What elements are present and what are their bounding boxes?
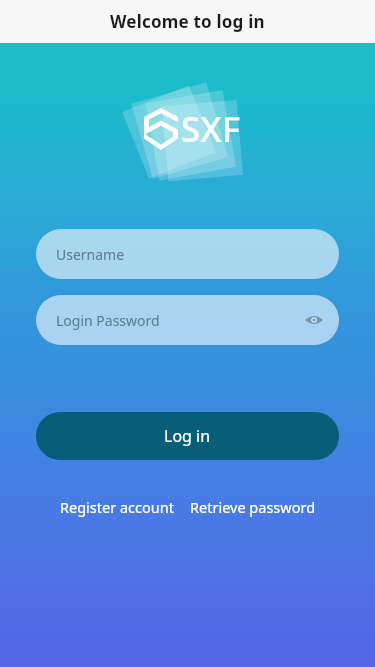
- staticText: Log in: [164, 425, 211, 447]
- staticText: Retrieve password: [190, 497, 316, 517]
- button[interactable]: Login Password: [36, 295, 339, 345]
- staticText: Login Password: [56, 311, 160, 330]
- staticText: Register account: [60, 497, 174, 517]
- button[interactable]: Register account: [56, 491, 178, 523]
- button[interactable]: Username: [36, 229, 339, 279]
- staticText: SXF: [181, 105, 241, 153]
- other: Show password: [305, 313, 323, 327]
- button[interactable]: Log in: [36, 412, 339, 460]
- staticText: Username: [56, 245, 125, 264]
- button[interactable]: Retrieve password: [186, 491, 320, 523]
- staticText: Welcome to log in: [110, 10, 265, 33]
